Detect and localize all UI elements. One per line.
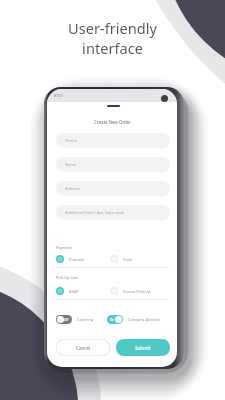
button[interactable]: Submit [116,339,170,356]
staticText: interface [82,38,143,58]
button[interactable]: Address [56,181,170,196]
button[interactable]: Additional Info / Apt. Gate code [56,205,170,220]
staticText: Prepaid [69,257,84,262]
staticText: Payment [56,245,72,250]
staticText: Phone [65,138,78,143]
button[interactable]: Cancel [56,339,110,356]
staticText: Submit [135,345,151,351]
button[interactable]: On [107,315,170,324]
button[interactable]: Off [56,315,107,324]
staticText: Cancel [76,345,91,351]
staticText: Name [65,162,77,167]
staticText: Address [65,186,81,191]
staticText: ASAP [69,289,79,294]
staticText: Cash [123,257,133,262]
button[interactable]: Cash [110,255,170,263]
staticText: Future Pick-Up [123,289,151,294]
button[interactable]: Prepaid [56,255,110,263]
button[interactable]: Phone [56,133,170,148]
staticText: AT&T [54,93,64,98]
staticText: Create New Order [94,119,132,125]
staticText: User-friendly [68,18,157,38]
staticText: Pick-Up time [56,275,79,280]
staticText: Catering [77,317,94,322]
staticText: Contains Alcohol [128,317,160,322]
staticText: On [110,318,115,322]
button[interactable]: ASAP [56,287,110,295]
button[interactable]: Future Pick-Up [110,287,170,295]
staticText: Additional Info / Apt. Gate code [65,210,124,215]
button[interactable]: Name [56,157,170,172]
staticText: Off [64,318,69,322]
